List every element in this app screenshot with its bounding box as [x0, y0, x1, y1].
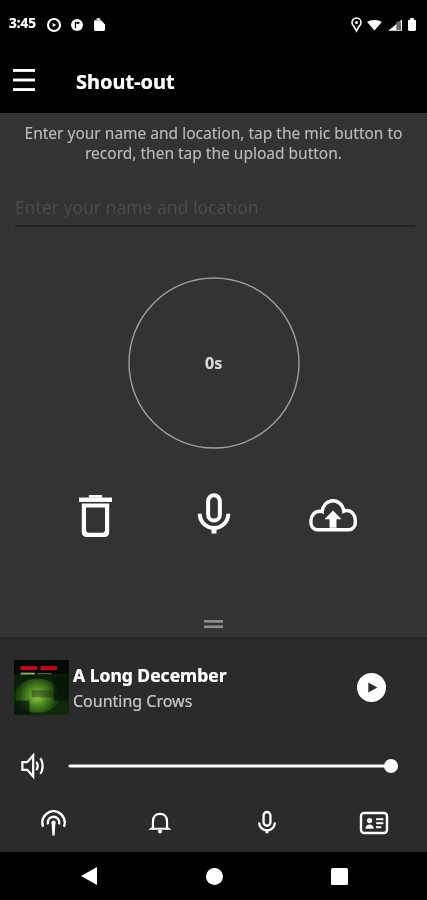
- staticText: 0s: [205, 352, 223, 374]
- staticText: A Long December: [73, 663, 227, 687]
- button[interactable]: Live caption: [353, 802, 395, 844]
- button[interactable]: Notifications: [139, 802, 181, 844]
- button[interactable]: Record: [190, 492, 238, 540]
- button[interactable]: Enter your name and location: [15, 195, 415, 227]
- button[interactable]: Back: [69, 856, 109, 896]
- staticText: Counting Crows: [73, 690, 193, 712]
- staticText: 3:45: [9, 14, 36, 32]
- staticText: Shout-out: [76, 68, 175, 95]
- staticText: Enter your name and location: [15, 195, 259, 219]
- button[interactable]: Microphone: [246, 802, 288, 844]
- button[interactable]: Play: [351, 667, 391, 707]
- button[interactable]: Upload: [309, 492, 357, 540]
- button[interactable]: Cast: [32, 802, 74, 844]
- staticText: Enter your name and location, tap the mi…: [14, 122, 413, 164]
- button[interactable]: Delete recording: [71, 492, 119, 540]
- button[interactable]: A Long December: [0, 641, 427, 733]
- button[interactable]: Open navigation menu: [4, 61, 44, 101]
- button[interactable]: Volume: [18, 752, 46, 780]
- button[interactable]: Recent apps: [319, 856, 359, 896]
- button[interactable]: Home: [194, 856, 234, 896]
